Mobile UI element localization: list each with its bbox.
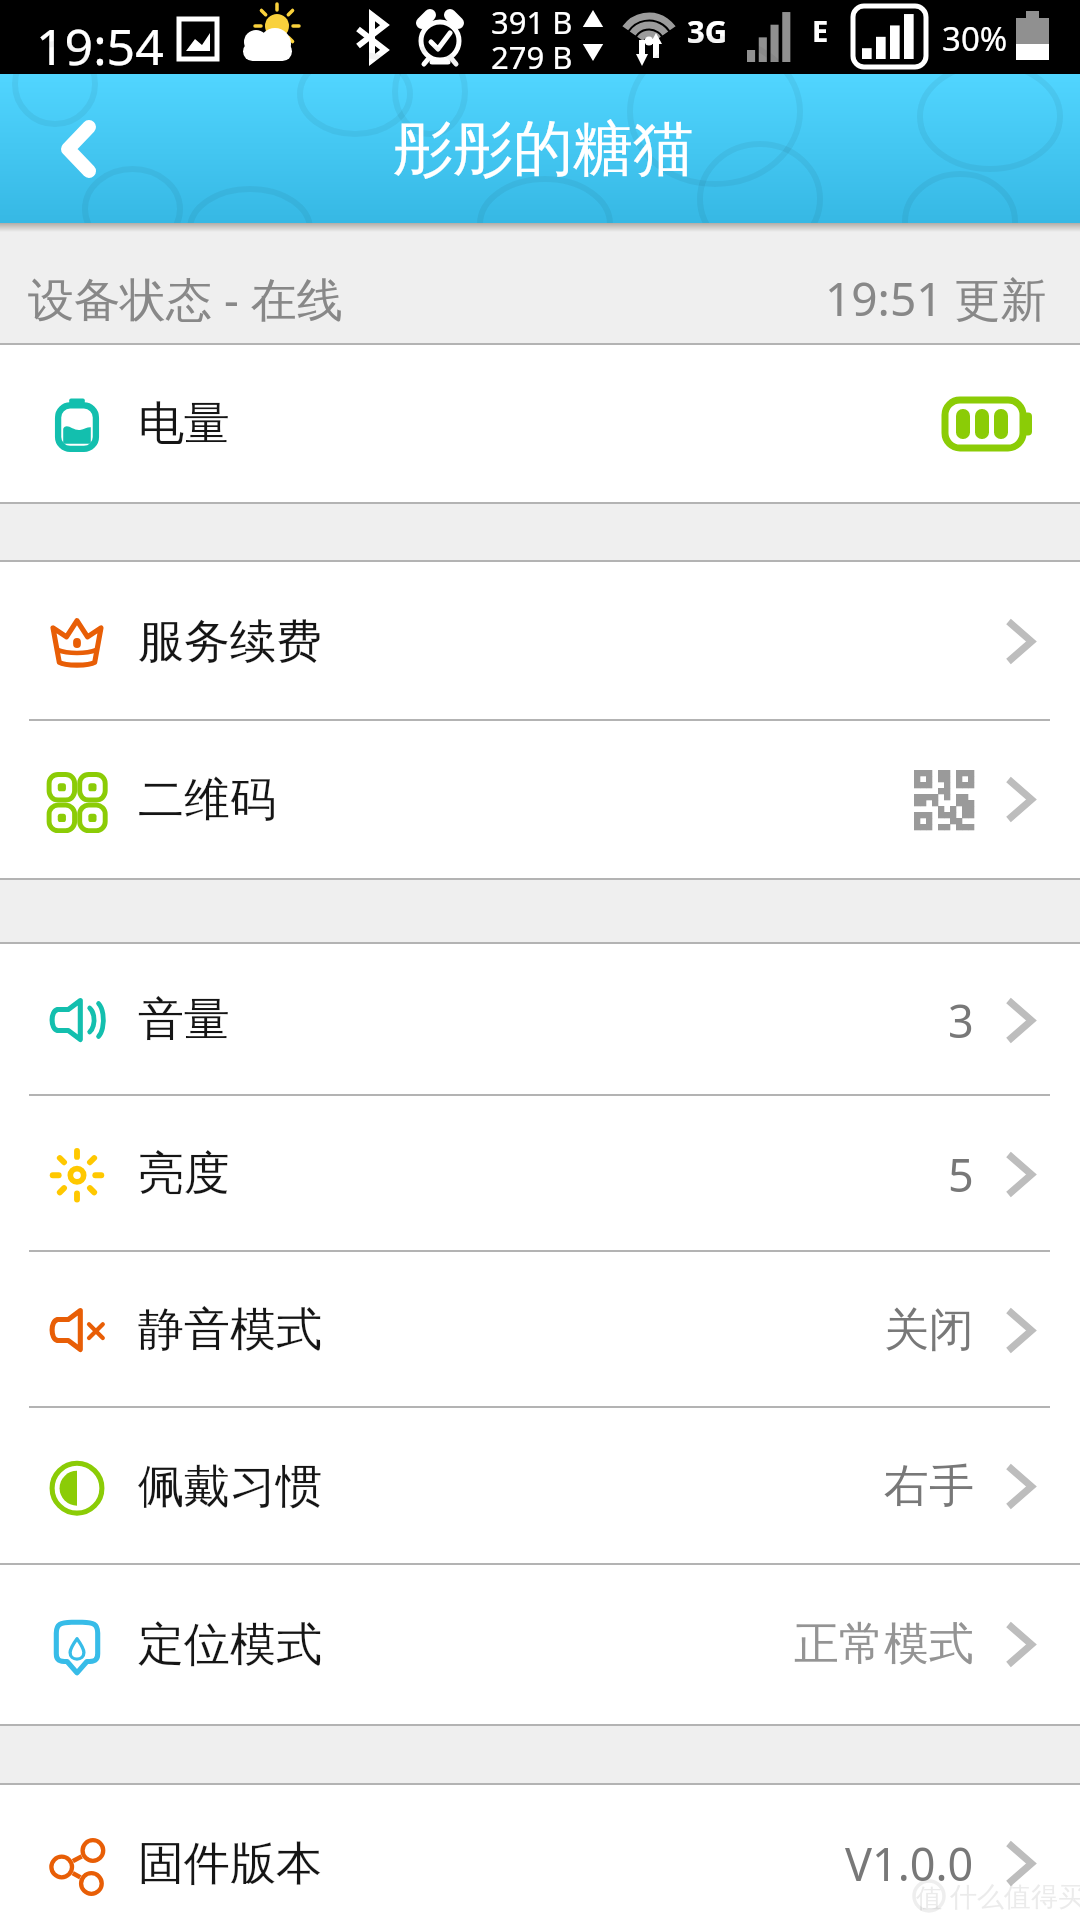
staticText: 佩戴习惯 (138, 1458, 322, 1516)
staticText: 音量 (138, 991, 230, 1049)
staticText: 服务续费 (138, 613, 322, 671)
staticText: 电量 (138, 395, 230, 453)
button[interactable]: 静音模式 (0, 1252, 1080, 1408)
staticText: 19:51 更新 (825, 267, 1047, 330)
button[interactable]: Back (59, 74, 1080, 223)
button[interactable]: 电量 (0, 345, 1080, 502)
staticText: 391 B (491, 1, 573, 43)
staticText: 亮度 (138, 1145, 230, 1203)
button[interactable]: 亮度 (0, 1096, 1080, 1252)
staticText: 固件版本 (138, 1835, 322, 1893)
staticText: 3 (948, 990, 974, 1051)
staticText: 定位模式 (138, 1616, 322, 1674)
button[interactable]: 二维码 (0, 721, 1080, 878)
staticText: 值 (916, 1882, 942, 1915)
staticText: 19:54 (36, 12, 164, 80)
staticText: 正常模式 (794, 1616, 974, 1673)
staticText: 279 B (491, 36, 573, 78)
button[interactable]: 固件版本 (0, 1785, 1080, 1920)
button[interactable]: 佩戴习惯 (0, 1408, 1080, 1565)
staticText: E (812, 11, 829, 50)
staticText: V1.0.0 (845, 1833, 974, 1894)
staticText: 彤彤的糖猫 (3, 111, 1080, 187)
staticText: 5 (948, 1144, 974, 1205)
button[interactable]: 服务续费 (0, 562, 1080, 721)
staticText: 3G (687, 10, 728, 52)
staticText: 静音模式 (138, 1301, 322, 1359)
staticText: 关闭 (884, 1302, 974, 1359)
staticText: 右手 (884, 1458, 974, 1515)
button[interactable]: 定位模式 (0, 1565, 1080, 1724)
staticText: 什么值得买 (950, 1880, 1080, 1914)
staticText: 30% (942, 16, 1008, 61)
staticText: 二维码 (138, 771, 276, 829)
button[interactable]: 音量 (0, 944, 1080, 1096)
staticText: 设备状态 - 在线 (28, 267, 343, 330)
